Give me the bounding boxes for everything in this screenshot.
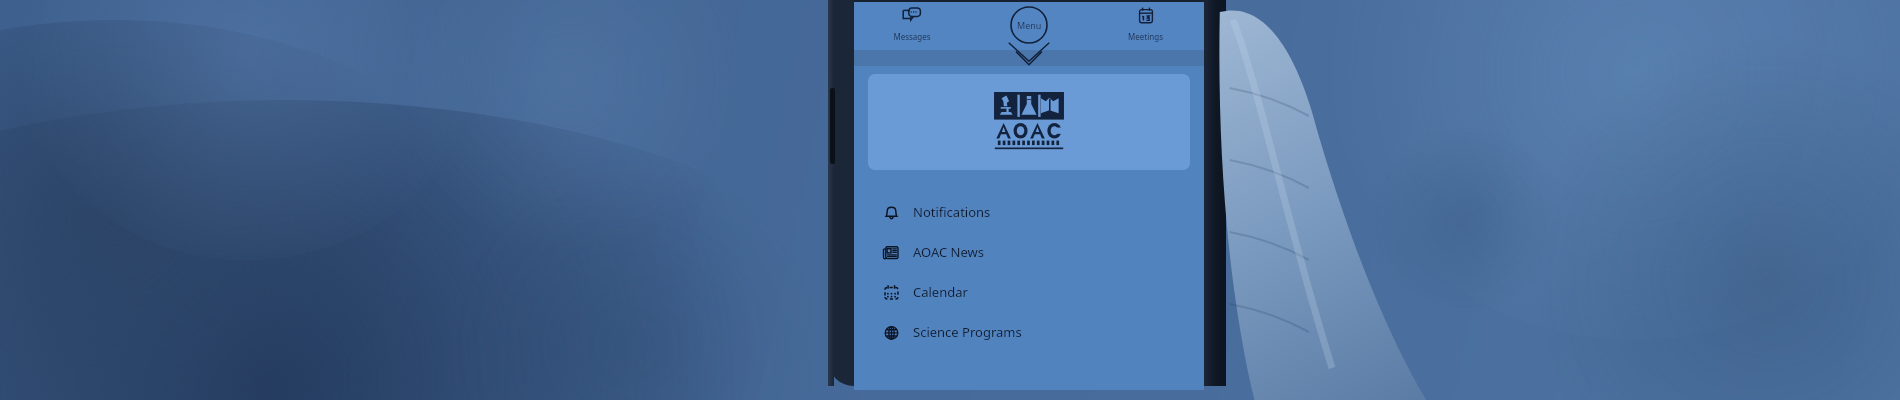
staticText: AOAC News — [913, 243, 984, 261]
other: AOAC International — [991, 92, 1067, 152]
staticText: Notifications — [913, 203, 991, 221]
staticText: Calendar — [913, 283, 968, 301]
other: Messages — [902, 6, 922, 26]
other: Meetings — [1136, 6, 1156, 26]
staticText: Meetings — [1128, 31, 1163, 42]
staticText: Messages — [893, 31, 931, 42]
staticText: Menu — [1017, 19, 1042, 31]
button[interactable]: Menu — [1010, 6, 1048, 44]
button[interactable]: Calendar — [868, 272, 1190, 312]
button[interactable]: Messages — [854, 2, 970, 50]
button[interactable]: AOAC News — [868, 232, 1190, 272]
button[interactable]: Meetings — [1087, 2, 1204, 50]
staticText: Science Programs — [913, 323, 1022, 341]
button[interactable]: Science Programs — [868, 312, 1190, 352]
button[interactable]: AOAC International — [868, 74, 1190, 170]
button[interactable]: Notifications — [868, 192, 1190, 232]
